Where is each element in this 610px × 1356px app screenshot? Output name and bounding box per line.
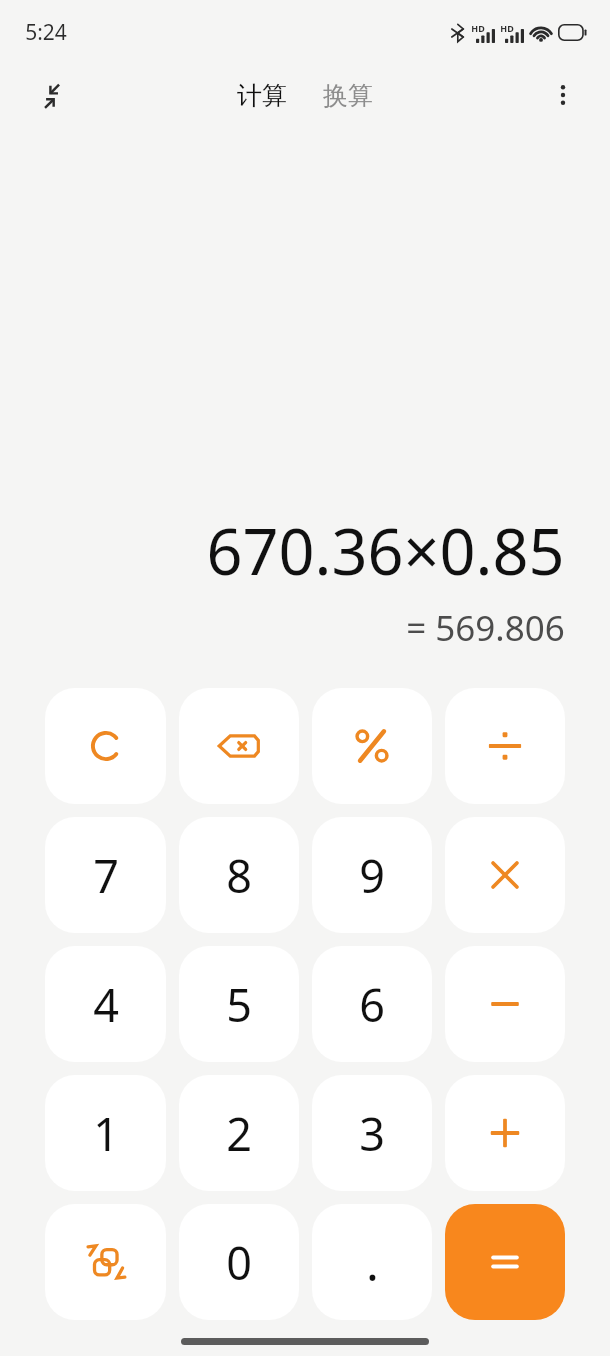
- staticText: 3: [359, 1103, 385, 1164]
- button[interactable]: Plus: [445, 1075, 565, 1191]
- button[interactable]: Equals: [445, 1204, 565, 1320]
- staticText: 6: [359, 974, 385, 1035]
- button[interactable]: 6: [312, 946, 432, 1062]
- button[interactable]: 4: [45, 946, 166, 1062]
- staticText: 计算: [237, 80, 287, 111]
- button[interactable]: 2: [179, 1075, 299, 1191]
- staticText: 7: [93, 845, 119, 906]
- button[interactable]: 计算: [231, 76, 293, 115]
- staticText: 换算: [323, 80, 373, 111]
- staticText: HD: [500, 22, 514, 34]
- staticText: 8: [226, 845, 252, 906]
- staticText: HD: [471, 22, 485, 34]
- button[interactable]: Scientific functions: [45, 1204, 166, 1320]
- button[interactable]: 8: [179, 817, 299, 933]
- staticText: 5:24: [25, 18, 67, 47]
- staticText: 2: [226, 1103, 252, 1164]
- staticText: 9: [359, 845, 385, 906]
- button[interactable]: Clear: [45, 688, 166, 804]
- button[interactable]: Multiply: [445, 817, 565, 933]
- button[interactable]: Percent: [312, 688, 432, 804]
- button[interactable]: .: [312, 1204, 432, 1320]
- button[interactable]: Collapse: [28, 72, 74, 118]
- staticText: .: [366, 1230, 379, 1295]
- button[interactable]: Minus: [445, 946, 565, 1062]
- button[interactable]: 9: [312, 817, 432, 933]
- button[interactable]: 1: [45, 1075, 166, 1191]
- staticText: = 569.806: [406, 604, 565, 652]
- staticText: 4: [93, 974, 119, 1035]
- button[interactable]: 7: [45, 817, 166, 933]
- staticText: 670.36×0.85: [206, 508, 565, 594]
- button[interactable]: 5: [179, 946, 299, 1062]
- button[interactable]: More options: [540, 72, 586, 118]
- button[interactable]: 换算: [317, 76, 379, 115]
- staticText: 5: [226, 974, 252, 1035]
- button[interactable]: Divide: [445, 688, 565, 804]
- button[interactable]: 3: [312, 1075, 432, 1191]
- button[interactable]: 0: [179, 1204, 299, 1320]
- staticText: 1: [93, 1103, 119, 1164]
- staticText: 0: [226, 1232, 252, 1293]
- button[interactable]: Backspace: [179, 688, 299, 804]
